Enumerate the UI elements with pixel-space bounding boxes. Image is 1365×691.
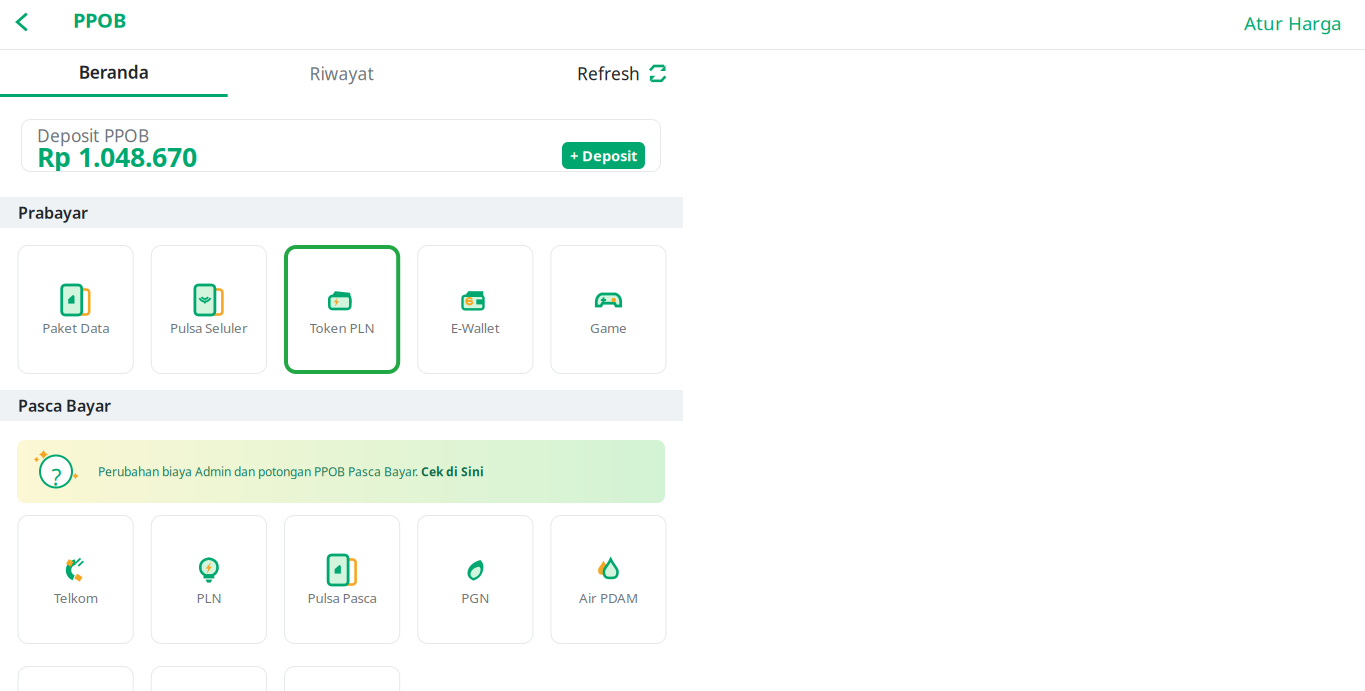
staticText: ?	[51, 462, 61, 492]
button[interactable]: Back	[0, 0, 44, 44]
button[interactable]: Riwayat	[228, 50, 455, 97]
button[interactable]: Pulsa Seluler	[151, 245, 267, 374]
staticText: Telkom	[54, 589, 98, 607]
button[interactable]: Multifinance	[284, 666, 400, 691]
staticText: Refresh	[577, 62, 640, 85]
staticText: Beranda	[79, 60, 149, 83]
button[interactable]: Air PDAM	[550, 515, 667, 644]
button[interactable]: + Deposit	[562, 142, 645, 169]
button[interactable]: PPOB	[73, 0, 143, 42]
button[interactable]: Atur Harga	[1244, 1, 1365, 45]
staticText: Game	[590, 319, 627, 337]
staticText: Atur Harga	[1244, 11, 1341, 35]
staticText: Prabayar	[18, 202, 88, 223]
button[interactable]: PGN	[417, 515, 533, 644]
button[interactable]: PLN	[151, 515, 267, 644]
staticText: Perubahan biaya Admin dan potongan PPOB …	[98, 463, 421, 479]
staticText: Pulsa Seluler	[170, 319, 248, 337]
staticText: Cek di Sini	[421, 463, 484, 479]
button[interactable]: E-Wallet	[417, 245, 533, 374]
staticText: PPOB	[73, 7, 126, 33]
button[interactable]: TV Kabel	[151, 666, 267, 691]
button[interactable]: Paket Data	[18, 245, 134, 374]
button[interactable]: Telkom	[18, 515, 134, 644]
button[interactable]: Pulsa Pasca	[284, 515, 400, 644]
staticText: Riwayat	[309, 62, 373, 85]
button[interactable]: Token PLN	[284, 245, 400, 374]
staticText: E-Wallet	[451, 319, 500, 337]
staticText: Pasca Bayar	[18, 395, 111, 416]
staticText: Rp 1.048.670	[37, 139, 197, 174]
button[interactable]: Refresh	[455, 50, 683, 97]
staticText: Deposit PPOB	[37, 124, 149, 147]
staticText: Token PLN	[310, 319, 375, 337]
staticText: PLN	[196, 589, 221, 607]
staticText: Paket Data	[42, 319, 109, 337]
button[interactable]: Game	[550, 245, 667, 374]
staticText: Pulsa Pasca	[308, 589, 377, 607]
staticText: Air PDAM	[579, 589, 638, 607]
button[interactable]: Beranda	[0, 50, 228, 97]
button[interactable]: BPJS	[18, 666, 134, 691]
staticText: PGN	[461, 589, 489, 607]
staticText: + Deposit	[570, 146, 637, 165]
